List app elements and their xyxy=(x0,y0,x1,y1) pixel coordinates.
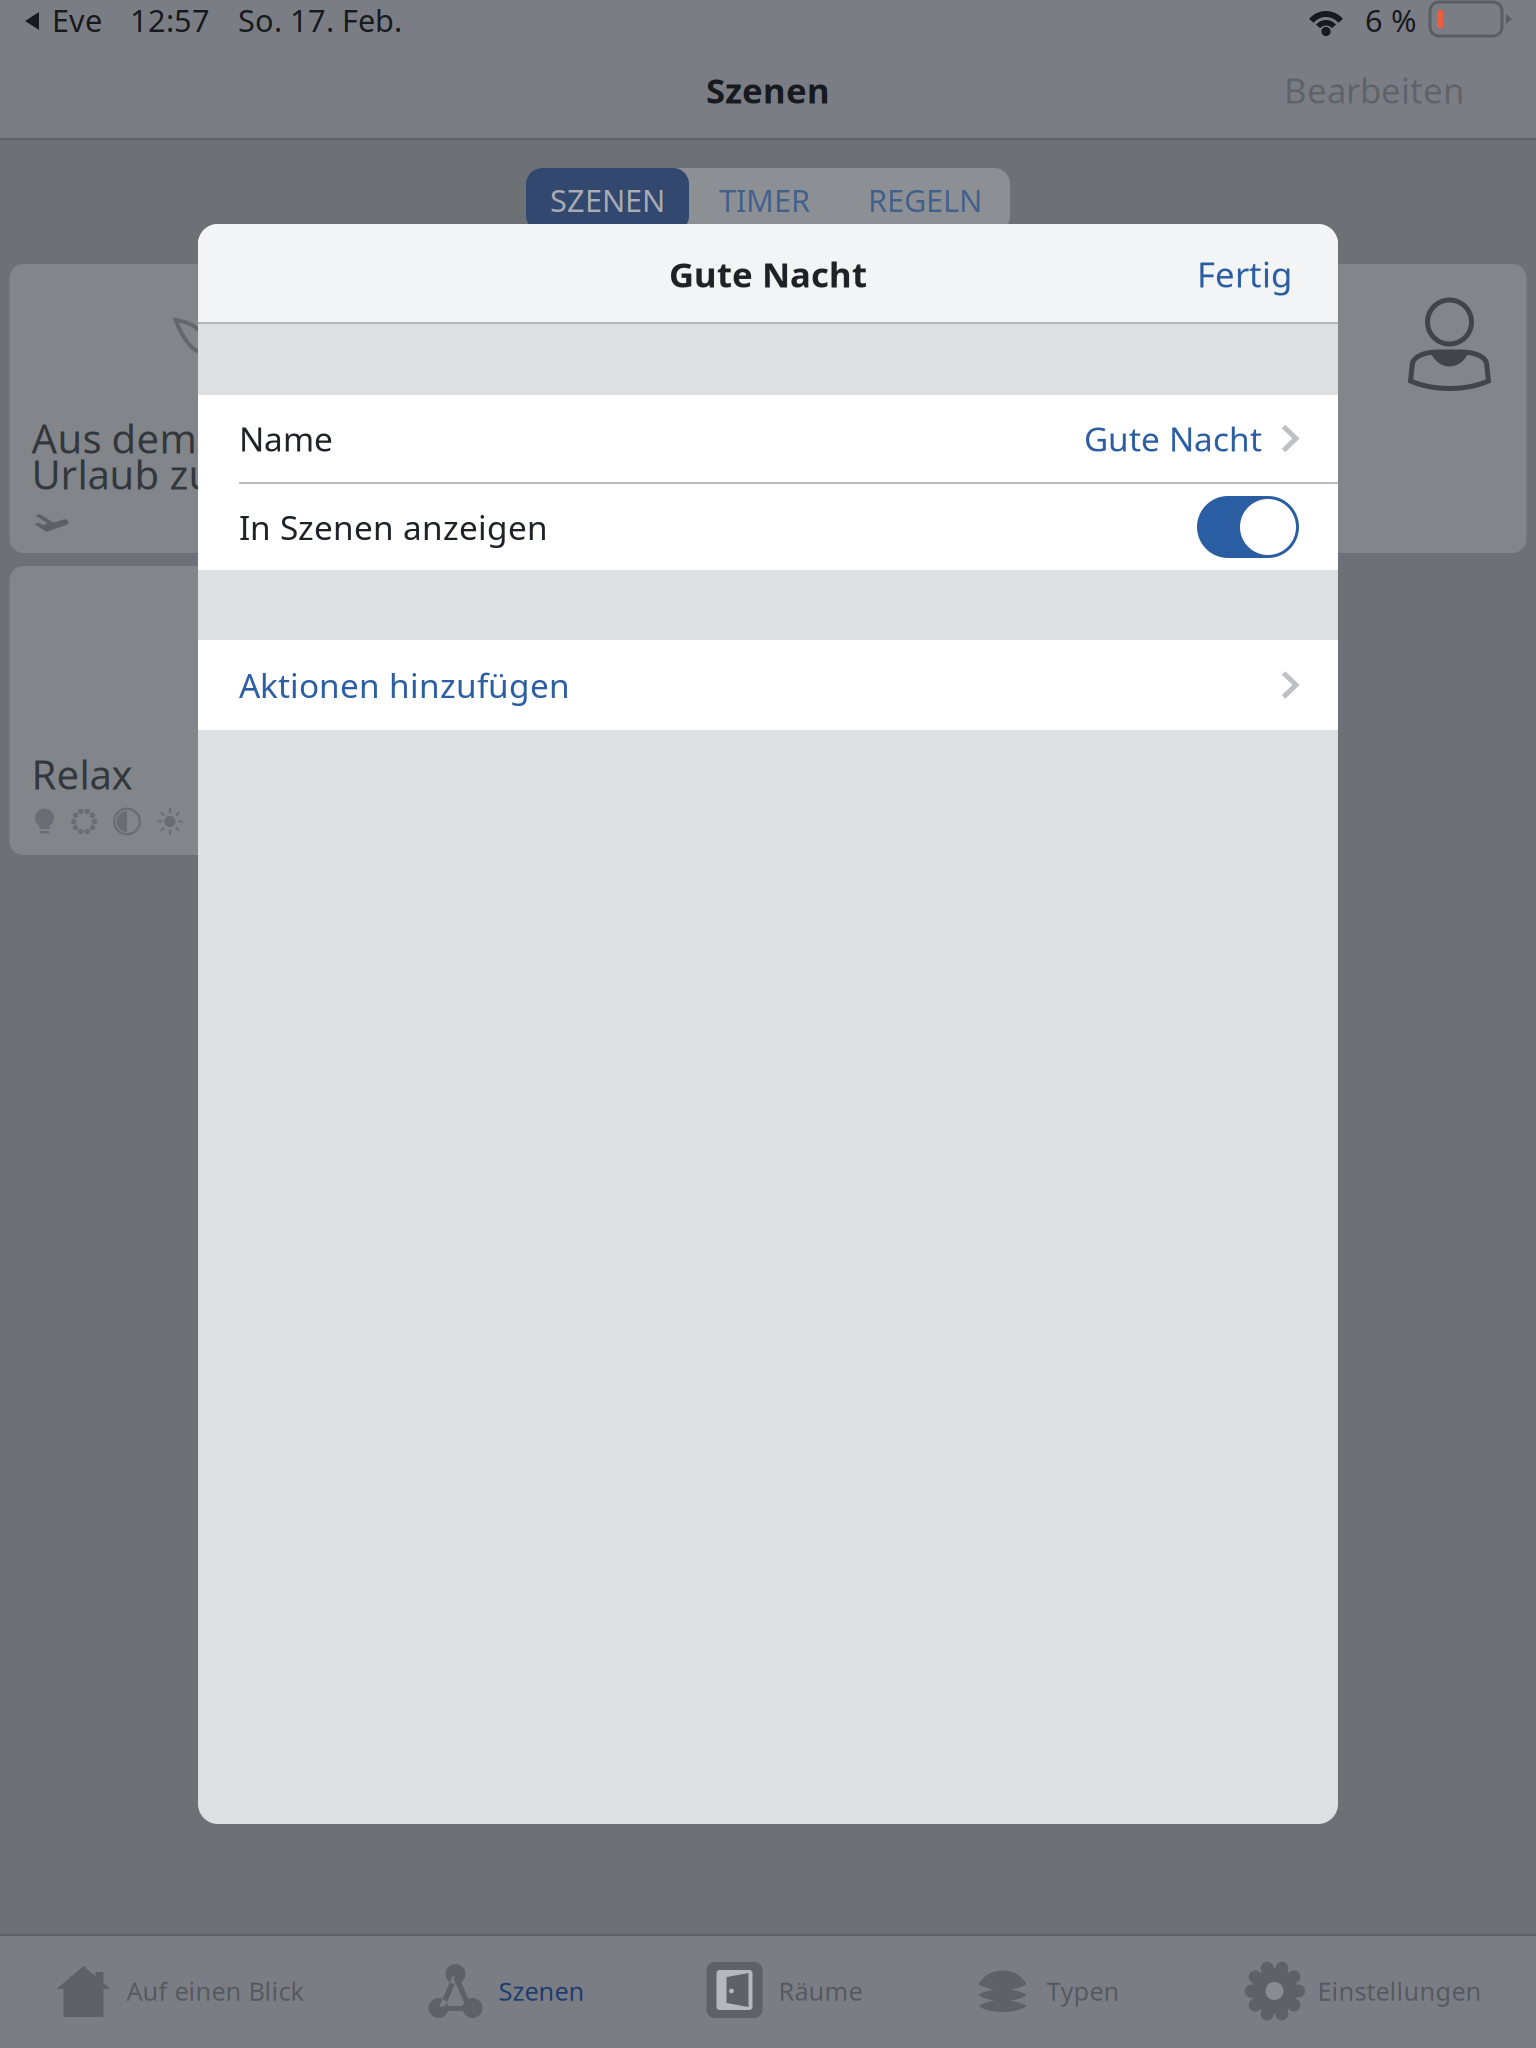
staticText: Räume xyxy=(778,1974,862,2008)
button[interactable]: REGELN xyxy=(840,168,1010,232)
button[interactable]: Name xyxy=(198,395,1338,482)
button[interactable]: Räume xyxy=(706,1934,862,2048)
staticText: Name xyxy=(239,416,333,461)
button[interactable]: Bearbeiten xyxy=(1270,47,1478,133)
button[interactable]: Szenen xyxy=(426,1934,584,2048)
staticText: Bearbeiten xyxy=(1284,67,1464,113)
staticText: Urlaub zurück xyxy=(31,447,295,500)
staticText: Typen xyxy=(1046,1974,1119,2008)
button[interactable]: Typen xyxy=(974,1934,1119,2048)
staticText: Relax xyxy=(31,747,132,800)
button[interactable]: In Szenen anzeigen xyxy=(198,484,1338,570)
staticText: 12:57 xyxy=(130,0,210,40)
staticText: So. 17. Feb. xyxy=(238,0,402,40)
staticText: Einstellungen xyxy=(1317,1974,1481,2008)
staticText: 6 % xyxy=(1365,0,1416,40)
staticText: Szenen xyxy=(706,67,830,113)
staticText: REGELN xyxy=(868,180,982,220)
staticText: TIMER xyxy=(719,180,810,220)
staticText: Aus dem xyxy=(31,411,196,464)
button[interactable]: SZENEN xyxy=(526,168,689,232)
button[interactable]: Auf einen Blick xyxy=(54,1934,304,2048)
staticText: Eve xyxy=(52,0,102,40)
staticText: Auf einen Blick xyxy=(126,1974,304,2008)
button[interactable]: TIMER xyxy=(689,168,840,232)
button[interactable]: Aktionen hinzufügen xyxy=(198,640,1338,730)
staticText: Gute Nacht xyxy=(669,251,867,297)
staticText: Aktionen hinzufügen xyxy=(239,663,570,707)
button[interactable]: Fertig xyxy=(1185,235,1304,313)
staticText: Fertig xyxy=(1197,251,1292,297)
button[interactable]: Einstellungen xyxy=(1245,1934,1481,2048)
staticText: SZENEN xyxy=(550,180,665,220)
staticText: Szenen xyxy=(498,1974,584,2008)
staticText: Gute Nacht xyxy=(1084,416,1262,461)
staticText: In Szenen anzeigen xyxy=(239,505,548,549)
